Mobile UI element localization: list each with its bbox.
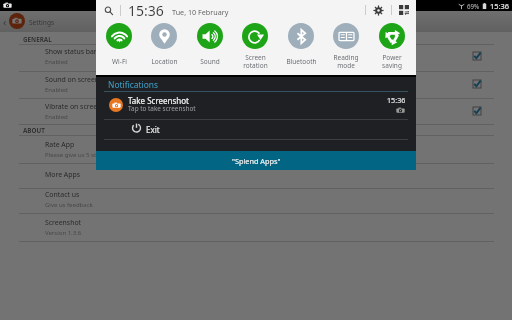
button[interactable]: Location bbox=[142, 23, 186, 69]
staticText: "Splend Apps" bbox=[232, 156, 281, 166]
button[interactable]: More Apps bbox=[0, 171, 512, 193]
other: Screenshot notification bbox=[3, 1, 12, 10]
staticText: Version 1.3.6 bbox=[45, 229, 82, 237]
staticText: Exit bbox=[146, 124, 160, 135]
staticText: Show status bar icon bbox=[45, 47, 113, 56]
staticText: Tap to take screenshot bbox=[128, 104, 196, 113]
staticText: Screen rotation bbox=[243, 53, 268, 70]
staticText: Reading mode bbox=[333, 53, 359, 70]
staticText: Enabled bbox=[45, 113, 68, 121]
button[interactable]: Screen rotation bbox=[233, 23, 277, 69]
button[interactable]: Show status bar icon bbox=[0, 48, 512, 70]
button[interactable]: "Splend Apps" bbox=[96, 151, 416, 170]
staticText: Rate App bbox=[45, 140, 75, 149]
button[interactable]: Bluetooth bbox=[279, 23, 323, 69]
button[interactable]: Power saving bbox=[370, 23, 414, 69]
staticText: Give us feedback bbox=[45, 201, 93, 209]
button[interactable]: Sound bbox=[188, 23, 232, 69]
staticText: Notifications bbox=[108, 79, 158, 90]
button[interactable]: Vibrate on screenshot bbox=[0, 103, 512, 125]
staticText: Location bbox=[151, 57, 178, 66]
staticText: 69% bbox=[467, 2, 480, 10]
staticText: ‹ bbox=[3, 14, 7, 29]
button[interactable]: Take Screenshot bbox=[96, 93, 416, 122]
staticText: Contact us bbox=[45, 190, 80, 199]
staticText: Tue, 10 February bbox=[172, 7, 229, 17]
staticText: Take Screenshot bbox=[128, 95, 190, 106]
button[interactable]: Sound on screenshot bbox=[0, 76, 512, 98]
staticText: Sound on screenshot bbox=[45, 75, 114, 84]
staticText: ABOUT bbox=[23, 126, 45, 135]
staticText: More Apps bbox=[45, 170, 80, 179]
button[interactable]: Rate App bbox=[0, 141, 512, 163]
staticText: 15:36 bbox=[387, 95, 406, 105]
button[interactable]: Exit bbox=[96, 120, 416, 139]
staticText: Enabled bbox=[45, 86, 68, 94]
button[interactable]: Wi-Fi bbox=[97, 23, 141, 69]
staticText: 15:36 bbox=[490, 1, 509, 11]
staticText: Power saving bbox=[382, 53, 402, 70]
staticText: Screenshot bbox=[45, 218, 82, 227]
button[interactable]: Search bbox=[104, 6, 113, 15]
button[interactable]: Settings bbox=[373, 5, 384, 16]
staticText: Wi-Fi bbox=[112, 57, 127, 66]
staticText: Vibrate on screenshot bbox=[45, 102, 116, 111]
staticText: Sound bbox=[200, 57, 220, 66]
staticText: GENERAL bbox=[23, 35, 52, 44]
button[interactable]: Reading mode bbox=[324, 23, 368, 69]
staticText: Enabled bbox=[45, 58, 68, 66]
button[interactable]: Edit quick settings bbox=[399, 5, 409, 15]
staticText: Settings bbox=[29, 18, 55, 27]
button[interactable]: Screenshot bbox=[0, 219, 512, 241]
staticText: Bluetooth bbox=[286, 57, 317, 66]
staticText: Please give us 5 stars bbox=[45, 151, 105, 159]
button[interactable]: App icon bbox=[9, 13, 25, 29]
staticText: 15:36 bbox=[128, 1, 164, 19]
button[interactable]: Contact us bbox=[0, 191, 512, 213]
